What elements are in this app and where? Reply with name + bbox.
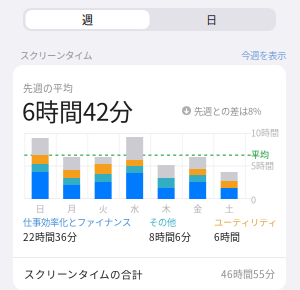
staticText: 6時間 bbox=[214, 229, 240, 244]
button[interactable]: 今週を表示 bbox=[241, 48, 286, 62]
staticText: 水 bbox=[130, 202, 139, 215]
staticText: 火 bbox=[99, 202, 108, 215]
button[interactable]: 週 bbox=[25, 10, 149, 29]
staticText: 仕事効率化とファイナンス bbox=[23, 215, 131, 228]
staticText: 平均 bbox=[251, 148, 269, 161]
staticText: 金 bbox=[193, 202, 202, 215]
staticText: 日 bbox=[36, 202, 45, 215]
staticText: 今週を表示 bbox=[241, 48, 286, 62]
staticText: 22時間36分 bbox=[23, 229, 77, 244]
staticText: 8時間6分 bbox=[149, 229, 191, 244]
staticText: 10時間 bbox=[251, 126, 279, 139]
staticText: ユーティリティ bbox=[214, 215, 277, 228]
staticText: 木 bbox=[162, 202, 171, 215]
staticText: スクリーンタイム bbox=[20, 48, 92, 62]
staticText: その他 bbox=[149, 215, 176, 228]
staticText: 6時間42分 bbox=[22, 93, 133, 128]
staticText: 先週との差は8% bbox=[194, 104, 261, 117]
staticText: 0 bbox=[251, 193, 256, 206]
button[interactable]: スクリーンタイムの合計 bbox=[24, 258, 275, 290]
staticText: 46時間55分 bbox=[221, 267, 275, 281]
staticText: 日 bbox=[206, 11, 217, 27]
staticText: スクリーンタイムの合計 bbox=[24, 266, 143, 282]
staticText: 土 bbox=[225, 202, 234, 215]
staticText: 週 bbox=[82, 11, 93, 27]
button[interactable]: 日 bbox=[149, 10, 273, 29]
staticText: 先週の平均 bbox=[23, 81, 73, 95]
staticText: 5時間 bbox=[251, 159, 274, 172]
staticText: 月 bbox=[67, 202, 76, 215]
